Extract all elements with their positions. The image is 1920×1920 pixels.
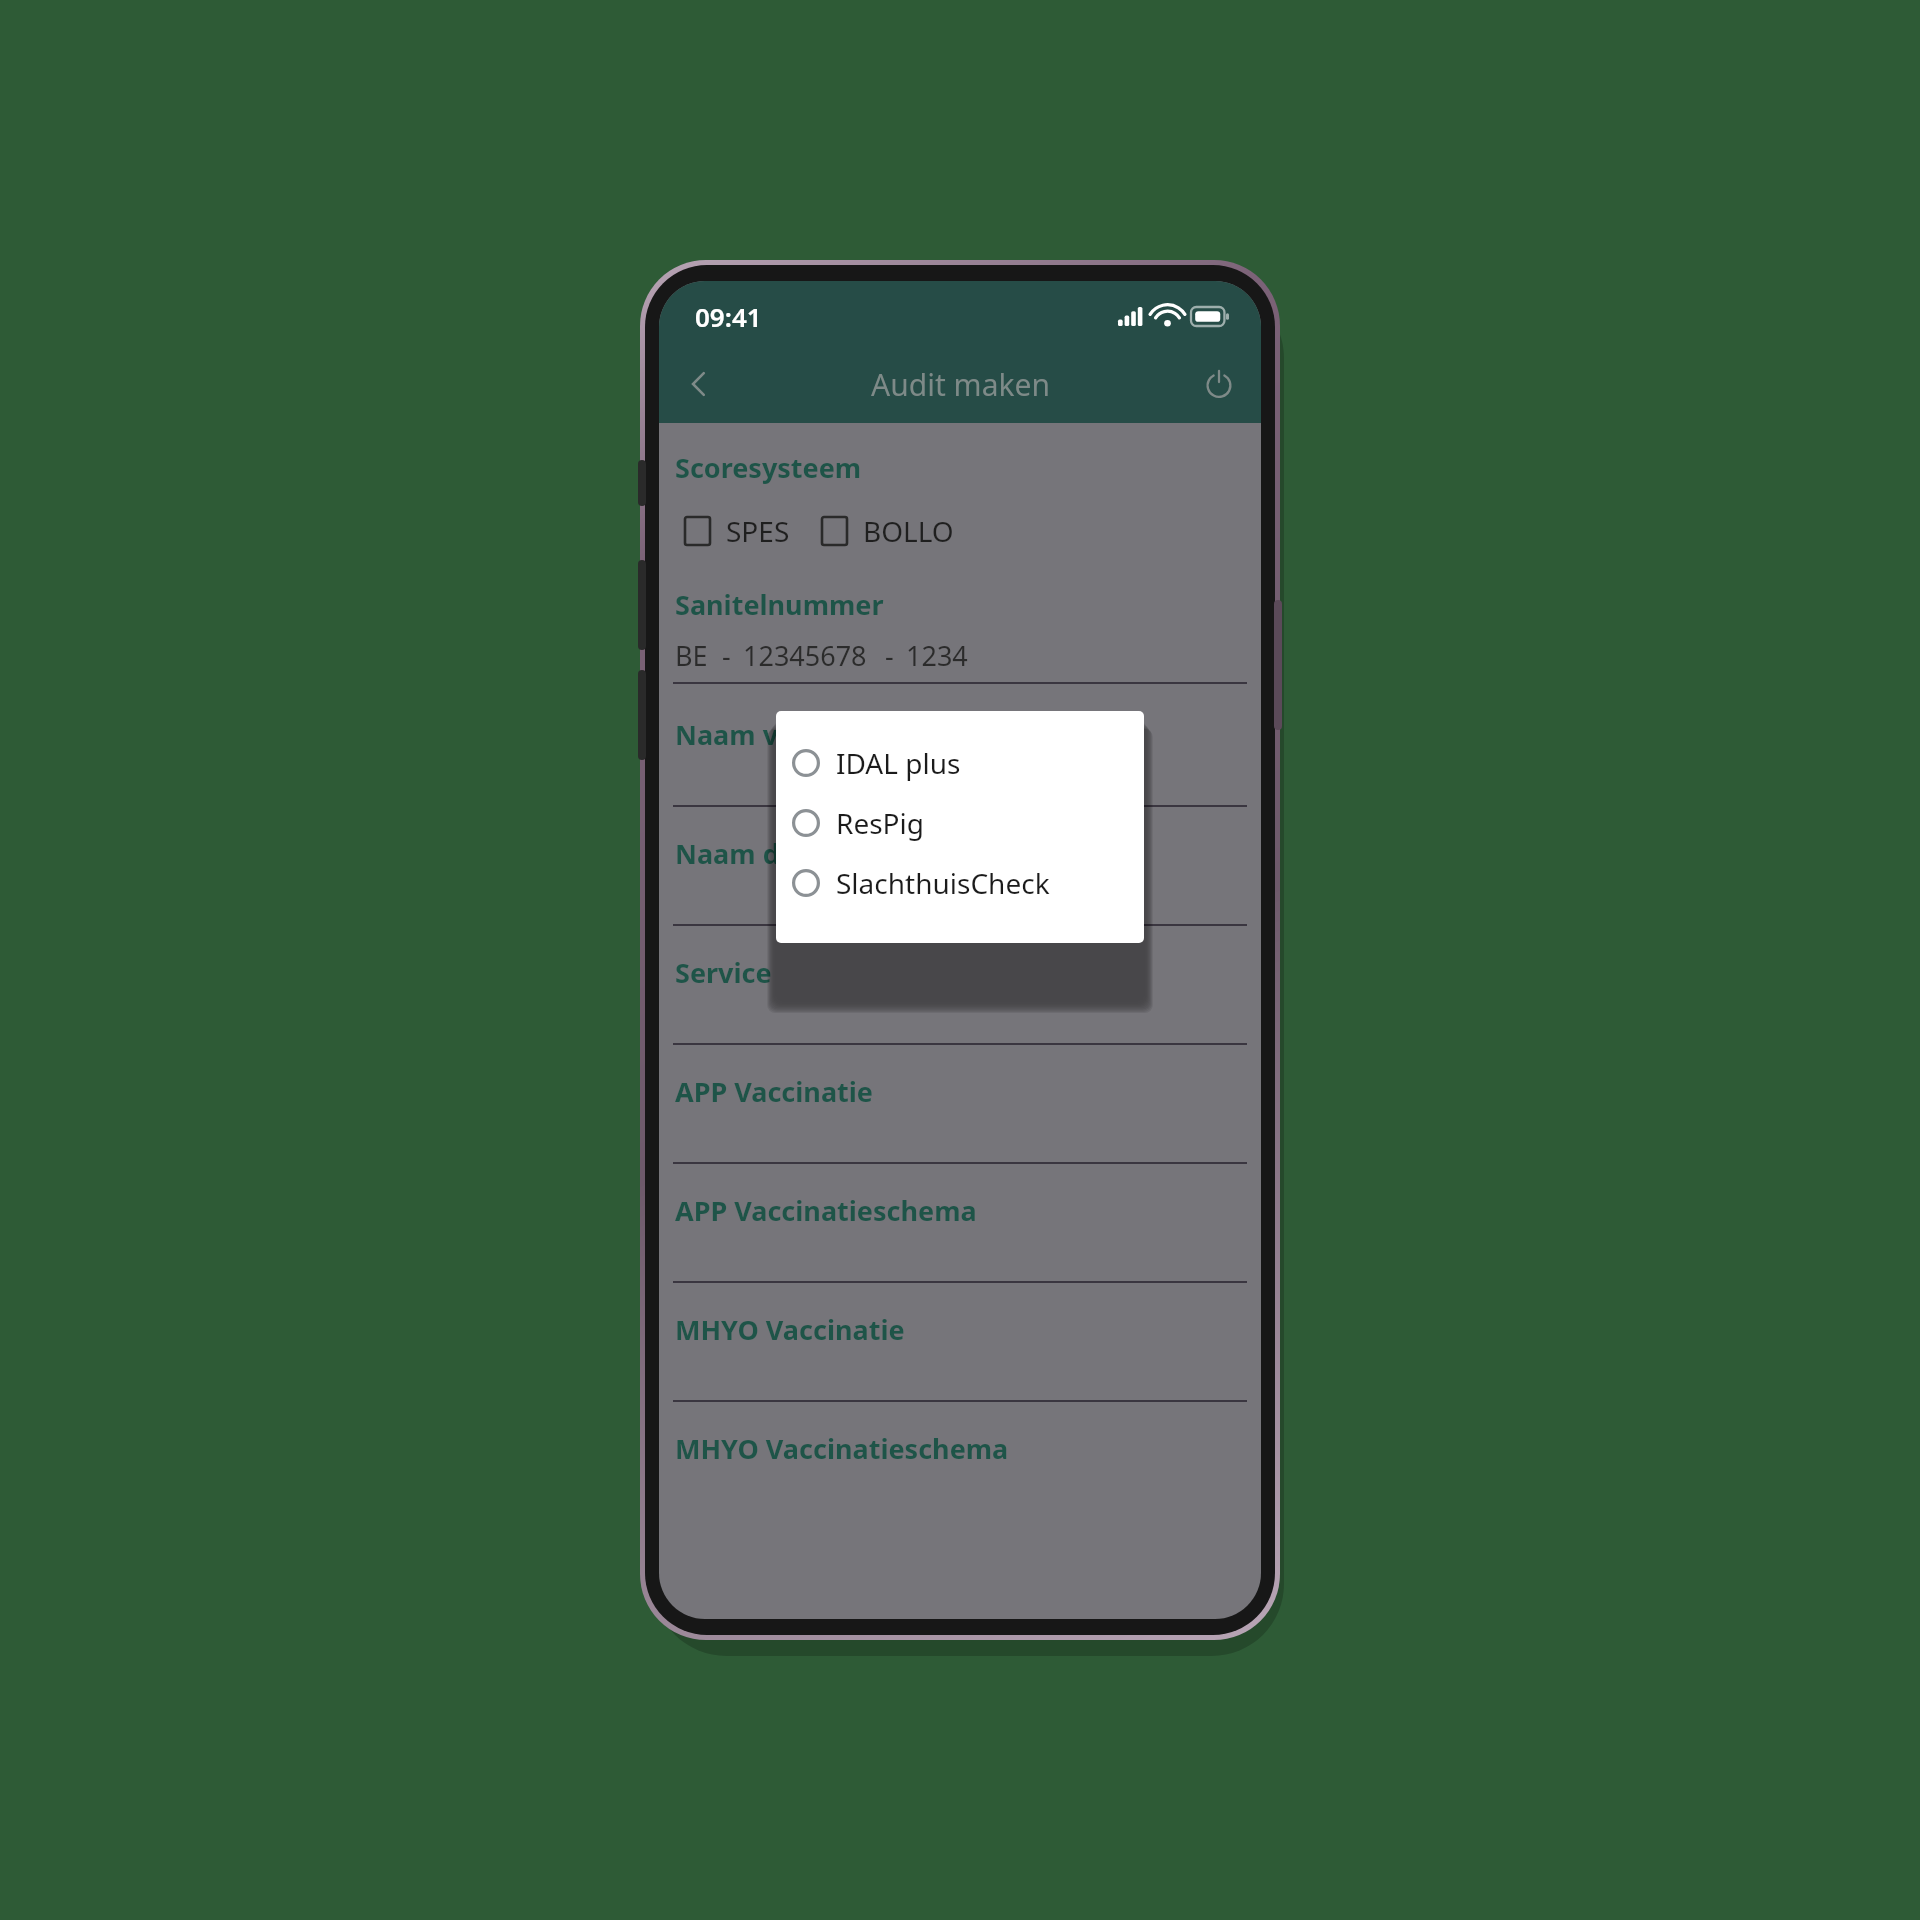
staticText: - (722, 637, 731, 674)
staticText: Naam varkenshouder (675, 716, 968, 753)
staticText: Service (675, 954, 772, 991)
staticText: 12345678 (743, 637, 867, 674)
staticText: Audit maken (871, 364, 1050, 405)
staticText: Sanitelnummer (675, 586, 884, 623)
staticText: Naam dierenarts (675, 835, 903, 872)
staticText: APP Vaccinatieschema (675, 1192, 977, 1229)
staticText: SlachthuisCheck (836, 864, 1050, 902)
staticText: BE (675, 637, 708, 674)
button[interactable]: Back (671, 356, 727, 412)
staticText: APP Vaccinatie (675, 1073, 873, 1110)
staticText: BOLLO (863, 512, 954, 550)
button[interactable]: SlachthuisCheck (776, 853, 1144, 913)
button[interactable]: Log out (1191, 356, 1247, 412)
button[interactable]: BOLLO (820, 508, 956, 554)
staticText: MHYO Vaccinatieschema (675, 1430, 1009, 1467)
button[interactable]: IDAL plus (776, 733, 1144, 793)
staticText: MHYO Vaccinatie (675, 1311, 905, 1348)
staticText: IDAL plus (836, 744, 961, 782)
staticText: 09:41 (695, 299, 762, 334)
staticText: ResPig (836, 804, 925, 842)
staticText: SPES (726, 512, 790, 550)
button[interactable]: SPES (683, 508, 792, 554)
staticText: - (885, 637, 894, 674)
staticText: 1234 (906, 637, 968, 674)
staticText: Scoresysteem (675, 449, 862, 486)
button[interactable]: ResPig (776, 793, 1144, 853)
